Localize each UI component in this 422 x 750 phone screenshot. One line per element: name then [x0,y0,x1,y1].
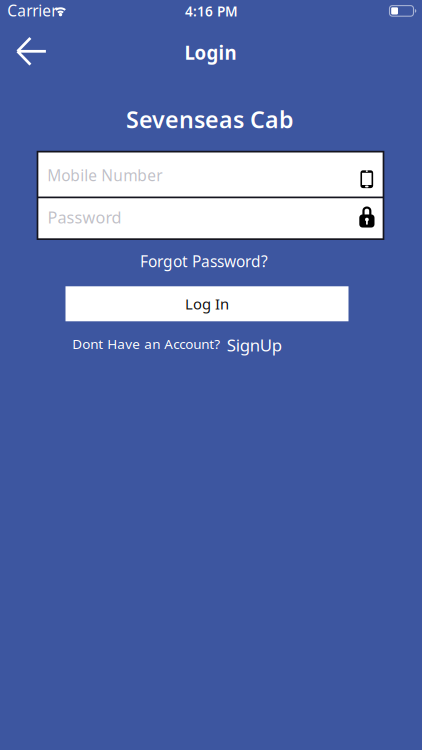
staticText: Sevenseas Cab [126,104,294,135]
staticText: Password [47,206,121,228]
staticText: Forgot Password? [140,251,268,271]
button[interactable]: SignUp [227,334,282,356]
staticText: 4:16 PM [185,2,238,20]
button[interactable]: Password [38,198,383,238]
button[interactable]: Log In [65,286,348,321]
staticText: Mobile Number [47,165,162,185]
staticText: Log In [185,294,229,314]
button[interactable]: Forgot Password? [140,251,268,271]
staticText: Carrier [7,0,57,21]
staticText: SignUp [227,334,282,356]
button[interactable]: Back [9,29,53,73]
staticText: Login [184,40,236,65]
staticText: Dont Have an Account? [72,335,220,353]
button[interactable]: Mobile Number [38,152,383,196]
